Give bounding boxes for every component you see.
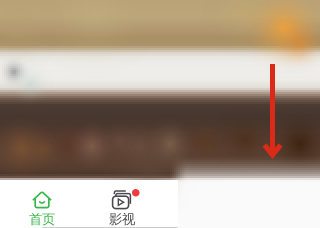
button[interactable]: 影视: [82, 183, 162, 225]
button[interactable]: 首页: [2, 183, 82, 225]
staticText: 影视: [109, 211, 135, 227]
staticText: 首页: [29, 211, 55, 227]
